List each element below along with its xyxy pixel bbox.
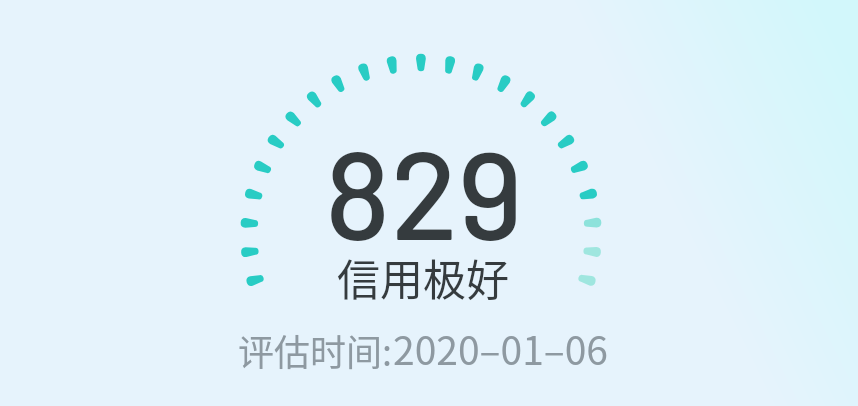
- staticText: 评估时间:: [238, 324, 393, 376]
- staticText: 信用极好: [337, 246, 509, 308]
- staticText: 2020–01–06: [393, 320, 608, 376]
- staticText: 829: [325, 116, 523, 265]
